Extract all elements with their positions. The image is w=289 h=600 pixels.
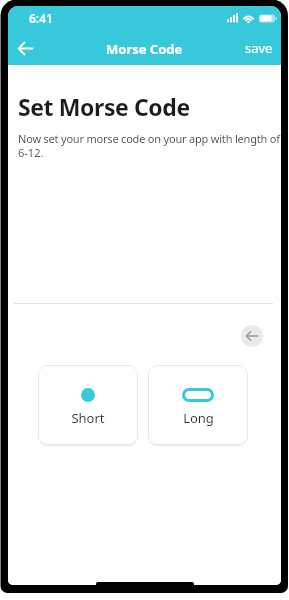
staticText: 6:41 xyxy=(29,10,53,26)
staticText: save xyxy=(245,39,273,57)
staticText: Short xyxy=(71,409,105,427)
button[interactable] xyxy=(241,325,263,347)
button[interactable] xyxy=(11,36,39,60)
staticText: Long xyxy=(183,409,214,427)
staticText: Morse Code xyxy=(106,40,183,58)
button[interactable]: Long xyxy=(148,365,248,445)
button[interactable]: Short xyxy=(38,365,138,445)
staticText: Now set your morse code on your app with… xyxy=(18,131,280,146)
staticText: 6-12. xyxy=(18,145,44,160)
button[interactable]: save xyxy=(245,35,273,53)
staticText: Set Morse Code xyxy=(18,91,190,122)
